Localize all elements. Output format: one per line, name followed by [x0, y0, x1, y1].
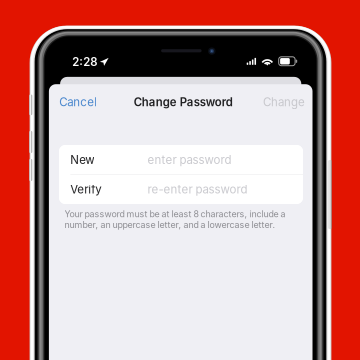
staticText: New — [70, 153, 94, 167]
button[interactable]: New — [59, 145, 303, 174]
staticText: 2:28 — [72, 55, 97, 69]
staticText: Change — [263, 95, 305, 109]
button[interactable]: Cancel — [56, 90, 100, 114]
staticText: Your password must be at least 8 charact… — [64, 209, 285, 230]
staticText: Change Password — [134, 95, 233, 109]
staticText: enter password — [148, 153, 232, 167]
button[interactable]: Verify — [59, 174, 303, 204]
staticText: Verify — [70, 182, 101, 196]
button[interactable]: Change — [260, 90, 308, 114]
staticText: Cancel — [59, 95, 97, 109]
staticText: re-enter password — [148, 182, 248, 196]
